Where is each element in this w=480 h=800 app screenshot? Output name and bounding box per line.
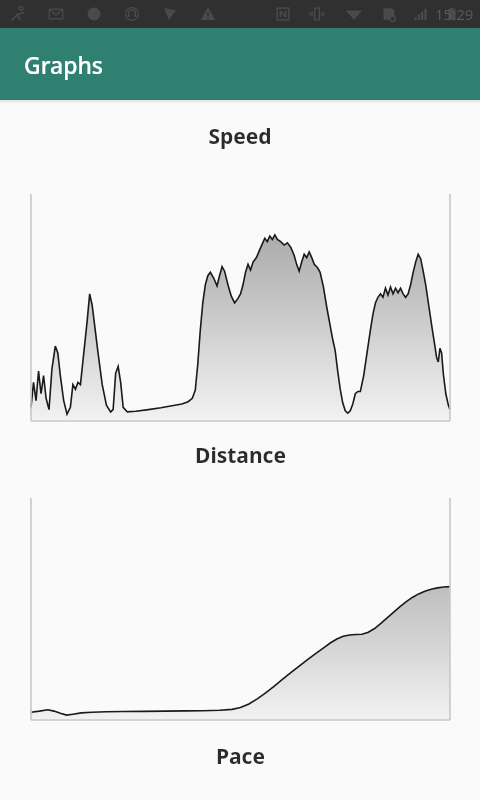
staticText: 15:29 [435,4,474,24]
button[interactable]: Distance graph [0,498,480,720]
staticText: Graphs [24,49,104,80]
staticText: Speed [208,122,272,151]
staticText: Distance [195,441,286,470]
staticText: Pace [216,742,265,771]
button[interactable]: Speed graph [0,194,480,421]
button[interactable]: Graphs [0,28,480,100]
